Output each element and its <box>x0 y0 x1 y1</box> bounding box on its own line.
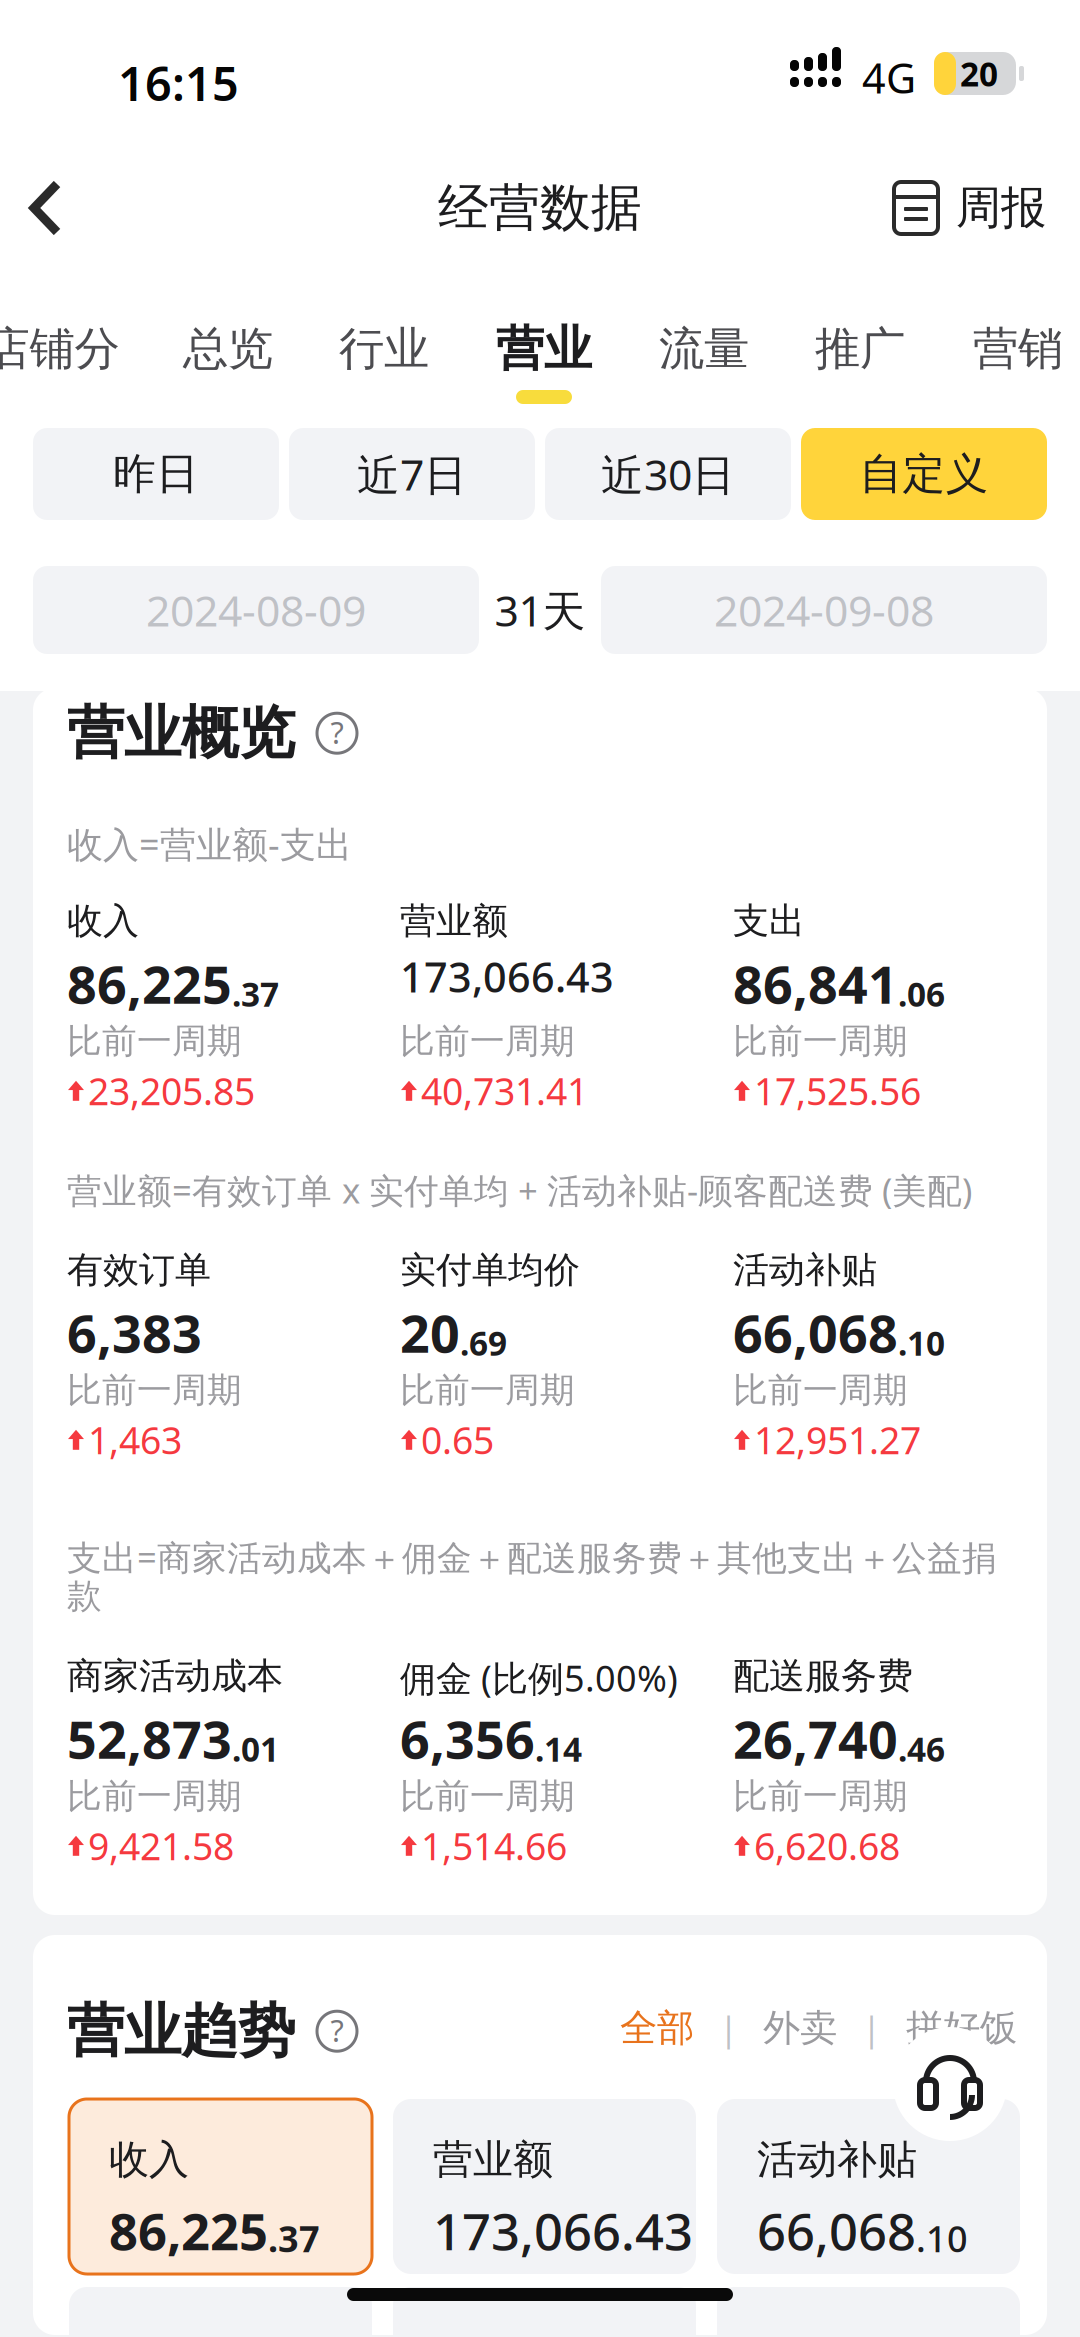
staticText: .14 <box>535 1727 582 1771</box>
button[interactable]: 店铺分 <box>0 319 132 437</box>
staticText: 经营数据 <box>438 177 642 239</box>
staticText: 40,731.41 <box>421 1066 588 1116</box>
staticText: 52,873 <box>67 1704 232 1773</box>
button[interactable]: 总览 <box>168 319 288 437</box>
button[interactable]: 昨日 <box>33 428 279 520</box>
staticText: 6,383 <box>67 1298 202 1367</box>
staticText: 支出=商家活动成本＋佣金＋配送服务费＋其他支出＋公益捐 <box>67 1534 997 1580</box>
button[interactable]: 收入 <box>69 2099 372 2274</box>
staticText: 6,356 <box>400 1704 535 1773</box>
staticText: 活动补贴 <box>733 1248 877 1292</box>
staticText: 31天 <box>494 582 585 638</box>
staticText: 比前一周期 <box>733 1775 908 1818</box>
staticText: .01 <box>232 1727 279 1771</box>
staticText: 店铺分 <box>0 321 119 377</box>
staticText: 12,951.27 <box>754 1415 921 1465</box>
staticText: 86,225 <box>109 2197 268 2264</box>
staticText: .69 <box>460 1321 507 1365</box>
staticText: .37 <box>268 2214 320 2262</box>
staticText: 有效订单 <box>67 1248 211 1292</box>
staticText: 4G <box>862 50 916 105</box>
button[interactable]: 营业额 <box>393 2099 696 2274</box>
staticText: 86,841 <box>733 949 898 1018</box>
staticText: | <box>719 2005 738 2051</box>
staticText: 配送服务费 <box>733 1654 913 1698</box>
staticText: 收入 <box>67 899 139 943</box>
staticText: 6,620.68 <box>754 1821 900 1871</box>
staticText: 周报 <box>956 180 1046 236</box>
button[interactable]: 行业 <box>324 319 444 437</box>
staticText: 流量 <box>659 321 749 377</box>
staticText: 营业额 <box>433 2135 553 2184</box>
staticText: 1,463 <box>88 1415 182 1465</box>
staticText: 9,421.58 <box>88 1821 234 1871</box>
button[interactable]: 周报 <box>796 150 1046 266</box>
staticText: 2024-09-08 <box>714 582 934 638</box>
staticText: 比前一周期 <box>67 1020 242 1063</box>
staticText: 1,514.66 <box>421 1821 567 1871</box>
staticText: 比前一周期 <box>67 1369 242 1412</box>
staticText: 营业额=有效订单 x 实付单均 + 活动补贴-顾客配送费 (美配) <box>67 1167 972 1213</box>
staticText: 营业概览 <box>67 698 295 768</box>
staticText: 昨日 <box>113 448 199 500</box>
staticText: 总览 <box>183 321 273 377</box>
staticText: 173,066.43 <box>400 949 614 1004</box>
staticText: .46 <box>898 1727 945 1771</box>
staticText: 23,205.85 <box>88 1066 255 1116</box>
staticText: 2024-08-09 <box>146 582 366 638</box>
staticText: 比前一周期 <box>400 1369 575 1412</box>
staticText: 173,066.43 <box>433 2197 693 2264</box>
staticText: 营销 <box>973 321 1063 377</box>
button[interactable]: 近7日 <box>289 428 535 520</box>
staticText: 20 <box>400 1298 460 1367</box>
button[interactable]: 拼好饭 <box>906 2005 1017 2051</box>
staticText: 16:15 <box>118 52 239 114</box>
button[interactable]: 营销 <box>958 319 1078 437</box>
staticText: | <box>862 2005 881 2051</box>
staticText: 近30日 <box>601 446 735 502</box>
staticText: 自定义 <box>859 448 988 500</box>
button[interactable]: 流量 <box>644 319 764 437</box>
staticText: 66,068 <box>733 1298 898 1367</box>
staticText: 全部 <box>620 2005 694 2051</box>
staticText: 活动补贴 <box>757 2135 917 2184</box>
staticText: ? <box>330 2010 343 2050</box>
staticText: 款 <box>67 1575 102 1618</box>
staticText: .10 <box>916 2214 968 2262</box>
staticText: 86,225 <box>67 949 232 1018</box>
button[interactable]: 2024-09-08 <box>601 566 1047 654</box>
staticText: 商家活动成本 <box>67 1654 283 1698</box>
button[interactable]: 推广 <box>800 319 920 437</box>
staticText: 佣金 (比例5.00%) <box>400 1654 678 1702</box>
staticText: 行业 <box>339 321 429 377</box>
staticText: .37 <box>232 972 279 1016</box>
staticText: 比前一周期 <box>733 1020 908 1063</box>
button[interactable]: 营业 <box>484 319 604 437</box>
button[interactable]: 全部 <box>620 2005 694 2051</box>
staticText: 营业趋势 <box>67 1996 295 2066</box>
staticText: 近7日 <box>357 446 467 502</box>
button[interactable]: 2024-08-09 <box>33 566 479 654</box>
staticText: ? <box>330 712 343 752</box>
staticText: 推广 <box>815 321 905 377</box>
button[interactable]: 外卖 <box>763 2005 837 2051</box>
staticText: 收入=营业额-支出 <box>67 820 352 868</box>
staticText: .06 <box>898 972 945 1016</box>
staticText: 比前一周期 <box>400 1775 575 1818</box>
staticText: 营业额 <box>400 899 508 943</box>
staticText: 收入 <box>109 2135 189 2184</box>
staticText: 比前一周期 <box>67 1775 242 1818</box>
staticText: 0.65 <box>421 1415 494 1465</box>
button[interactable]: 客服 <box>893 2027 1007 2141</box>
staticText: 17,525.56 <box>754 1066 921 1116</box>
button[interactable]: 返回 <box>5 150 115 266</box>
staticText: 实付单均价 <box>400 1248 580 1292</box>
staticText: 20 <box>960 51 998 96</box>
staticText: 比前一周期 <box>733 1369 908 1412</box>
button[interactable]: 近30日 <box>545 428 791 520</box>
button[interactable]: 活动补贴 <box>717 2099 1020 2274</box>
staticText: .10 <box>898 1321 945 1365</box>
button[interactable]: 自定义 <box>801 428 1047 520</box>
staticText: 拼好饭 <box>906 2005 1017 2051</box>
staticText: 营业 <box>496 319 592 378</box>
